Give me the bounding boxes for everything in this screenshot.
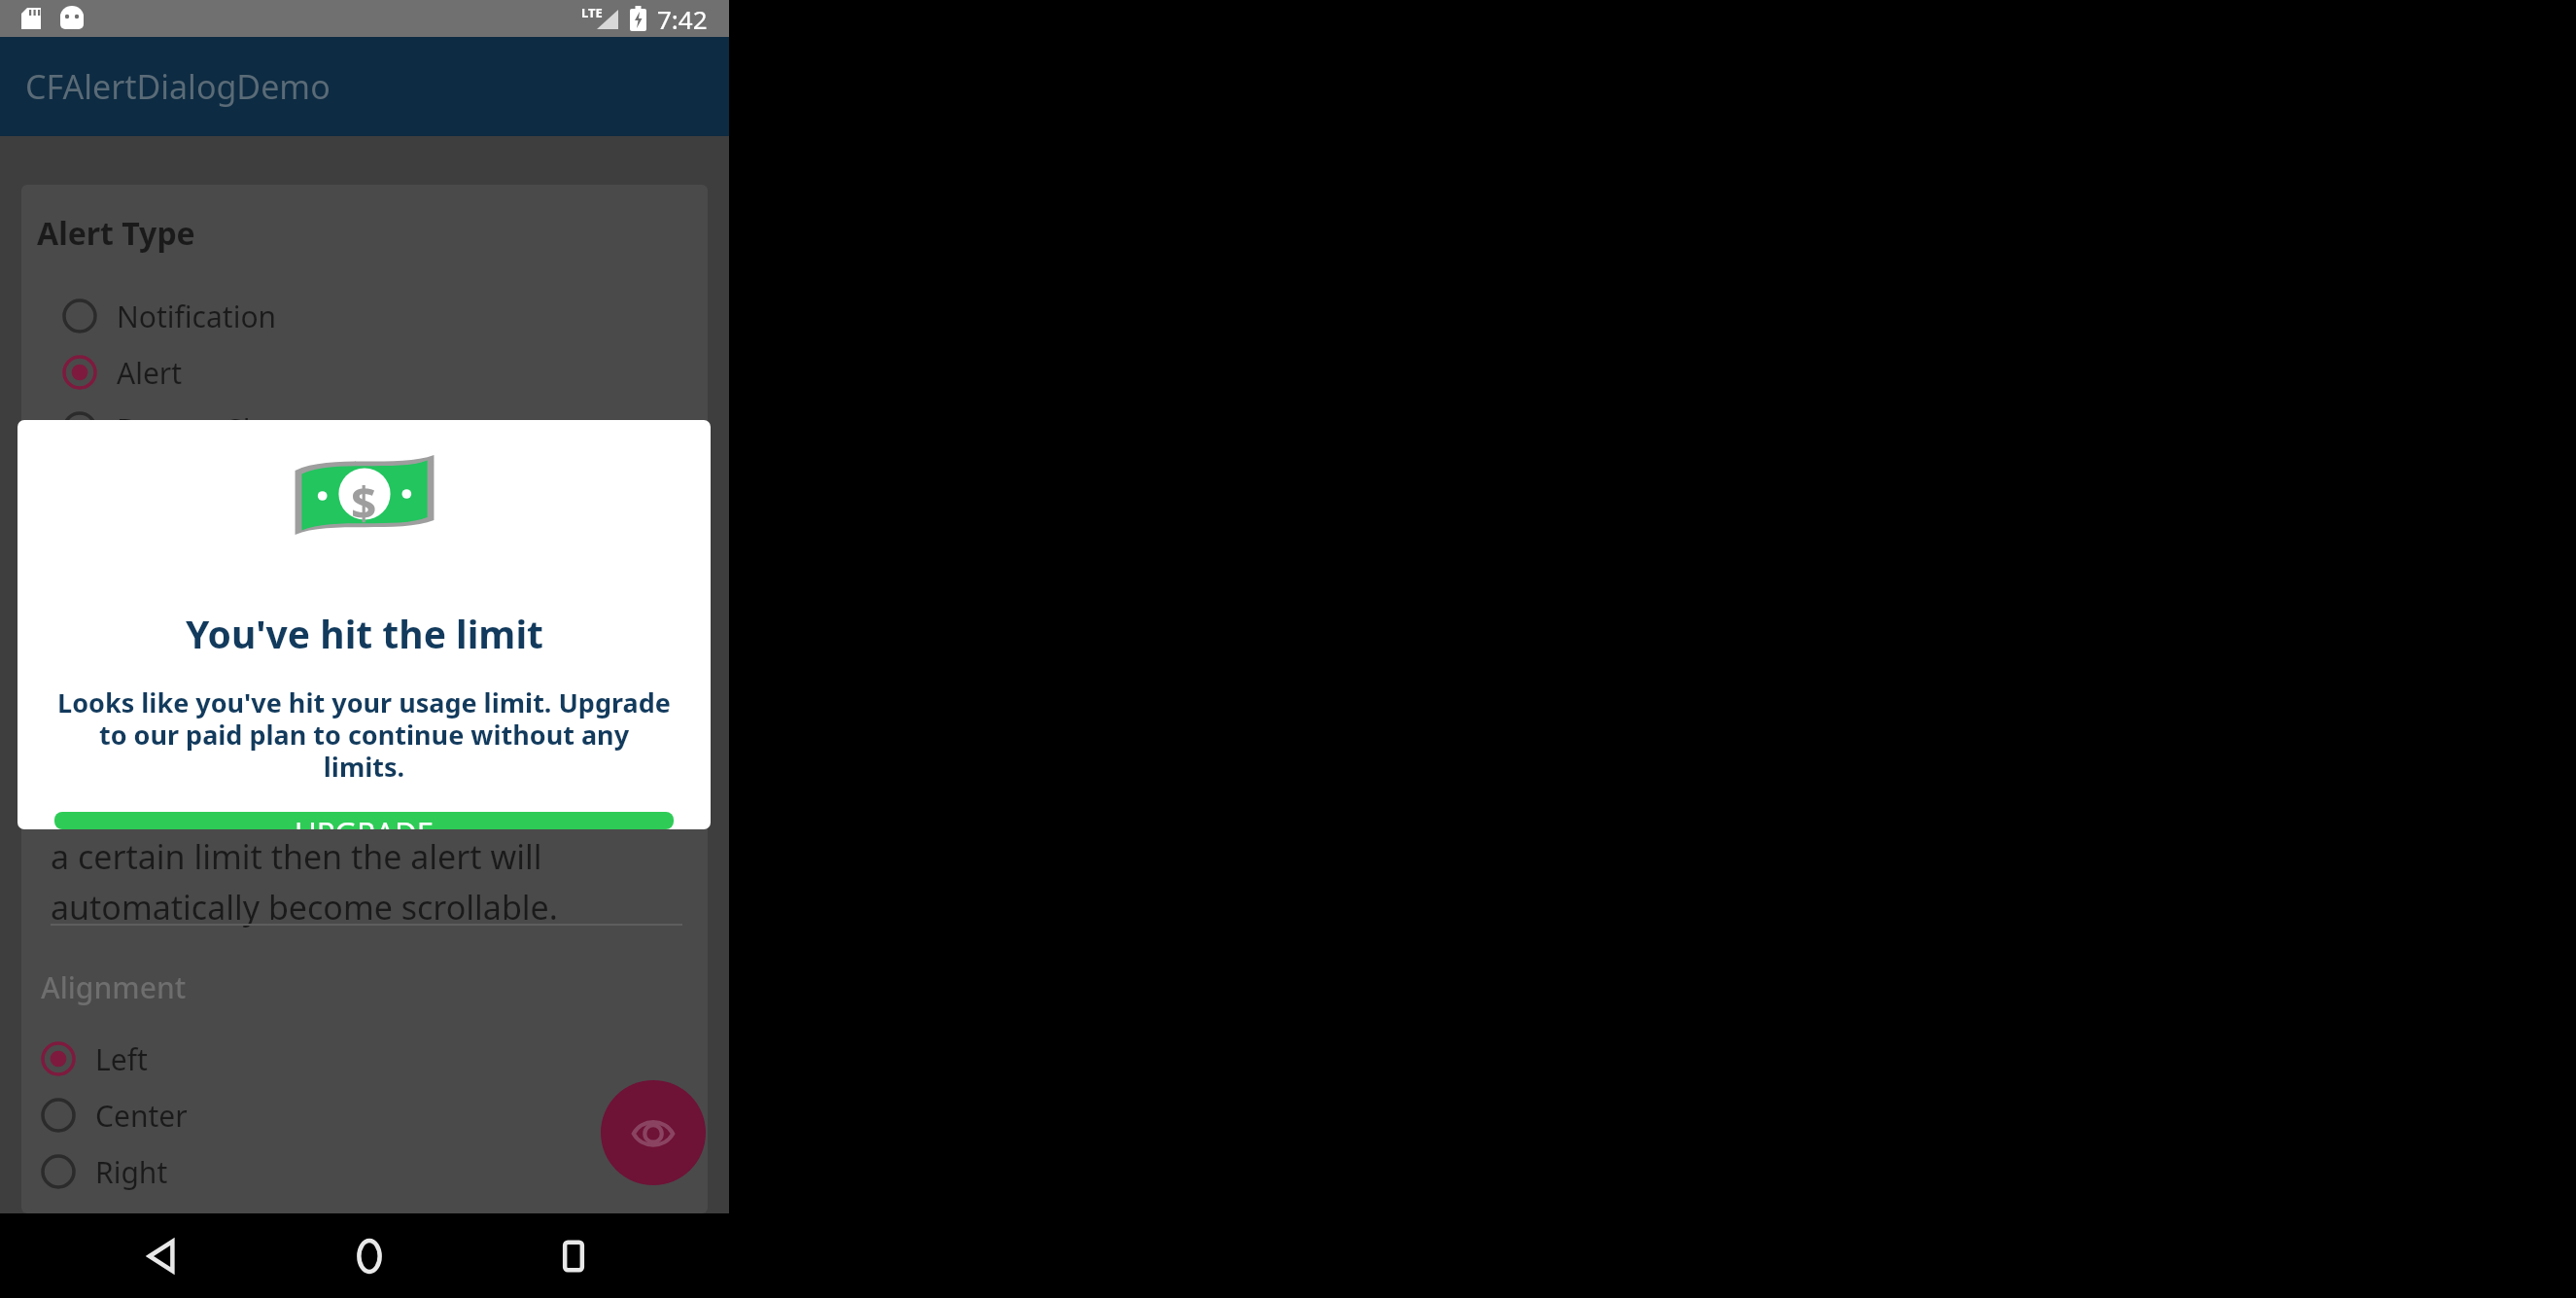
button[interactable]: Bottom Sheet bbox=[21, 401, 708, 457]
button[interactable]: Center bbox=[0, 1087, 729, 1143]
staticText: Alignment bbox=[41, 967, 187, 1007]
staticText: automatically become scrollable. bbox=[51, 885, 558, 930]
button[interactable]: Home bbox=[332, 1213, 406, 1298]
staticText: Looks like you've hit your usage limit. … bbox=[56, 684, 672, 785]
staticText: a certain limit then the alert will bbox=[51, 834, 542, 879]
button[interactable]: Left bbox=[0, 1031, 729, 1087]
staticText: You've hit the limit bbox=[186, 608, 543, 659]
staticText: Alert Type bbox=[37, 212, 195, 255]
staticText: Center bbox=[95, 1096, 188, 1136]
staticText: $ bbox=[351, 473, 377, 534]
staticText: 7:42 bbox=[657, 2, 708, 36]
button[interactable]: Alert bbox=[21, 344, 708, 401]
staticText: UPGRADE bbox=[295, 812, 434, 829]
staticText: Left bbox=[95, 1039, 148, 1079]
button[interactable]: Notification bbox=[21, 288, 708, 344]
staticText: Notification bbox=[117, 297, 277, 336]
button[interactable]: Back bbox=[124, 1213, 198, 1298]
button[interactable]: Right bbox=[0, 1143, 729, 1200]
staticText: Right bbox=[95, 1152, 168, 1192]
button[interactable]: UPGRADE bbox=[54, 812, 674, 829]
button[interactable]: Preview alert bbox=[601, 1080, 706, 1185]
staticText: CFAlertDialogDemo bbox=[25, 64, 331, 109]
staticText: Alert bbox=[117, 353, 183, 393]
staticText: Bottom Sheet bbox=[117, 409, 304, 449]
staticText: LTE bbox=[581, 4, 603, 21]
button[interactable]: Recent apps bbox=[537, 1213, 610, 1298]
